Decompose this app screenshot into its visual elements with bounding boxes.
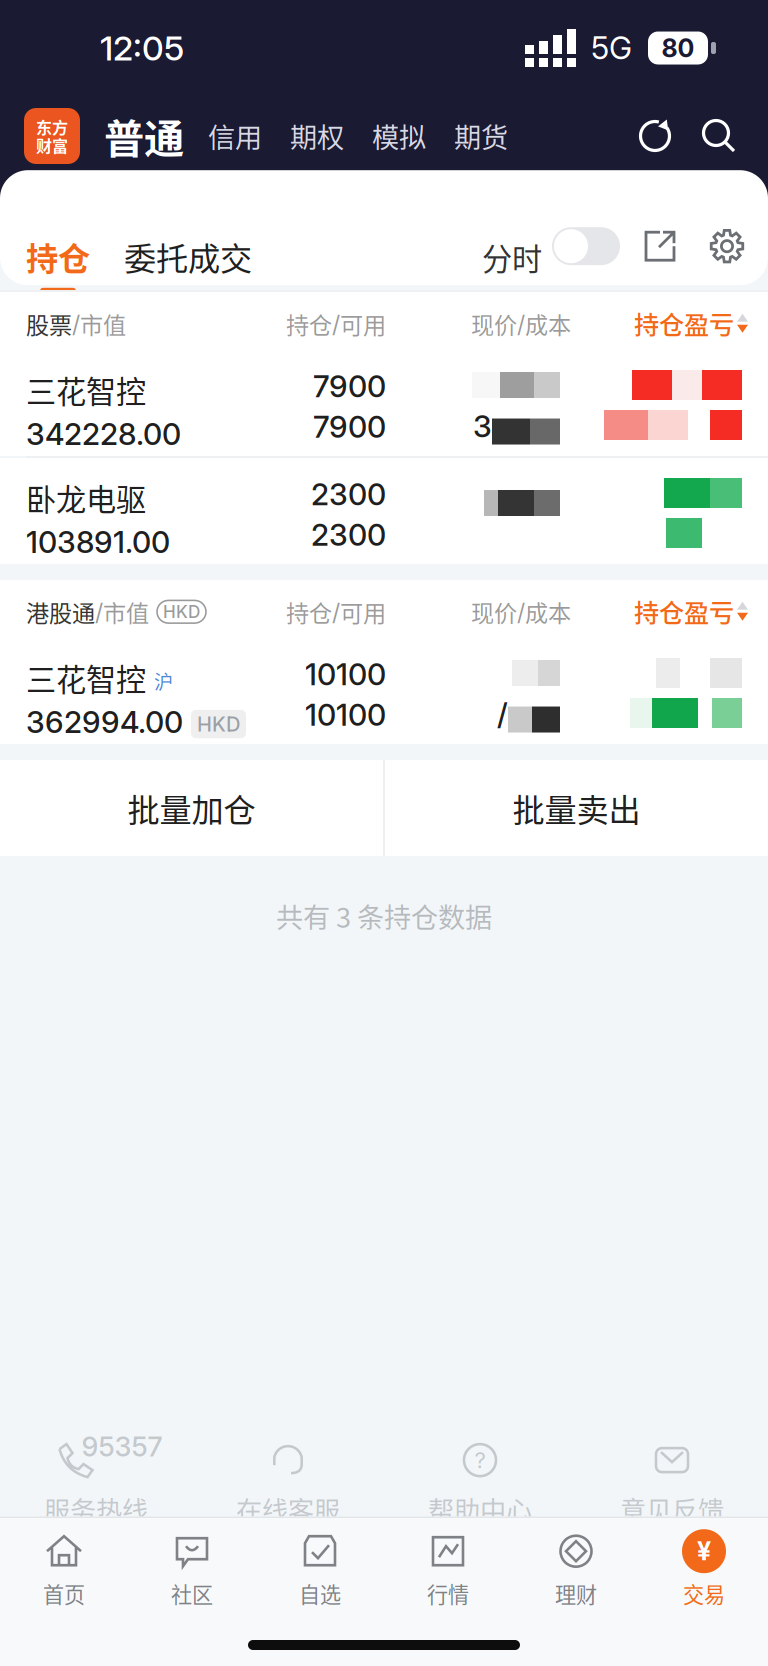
staticText: 分时	[482, 235, 542, 279]
staticText: 自选	[299, 1578, 341, 1609]
staticText: 在线客服	[236, 1490, 340, 1528]
staticText: 现价	[471, 307, 517, 340]
staticText: 批量卖出	[512, 785, 640, 831]
staticText: 12:05	[100, 27, 184, 69]
staticText: 首页	[43, 1578, 85, 1609]
button[interactable]: ¥	[640, 1532, 768, 1609]
staticText: 普通	[104, 107, 184, 165]
button[interactable]: ?	[384, 1440, 576, 1528]
staticText: 10100	[305, 696, 386, 733]
staticText: 委托成交	[124, 233, 252, 280]
staticText: 7900	[313, 368, 386, 404]
staticText: 交易	[683, 1578, 725, 1609]
button[interactable]: Settings	[706, 225, 748, 267]
button[interactable]: 自选	[256, 1532, 384, 1609]
staticText: 共有 3 条持仓数据	[276, 896, 492, 936]
button[interactable]: 95357	[0, 1440, 192, 1528]
staticText: 期货	[454, 116, 508, 156]
button[interactable]: 模拟	[358, 108, 440, 164]
staticText: /	[332, 598, 340, 626]
staticText: 东方	[36, 115, 68, 138]
staticText: 342228.00	[26, 416, 181, 452]
button[interactable]: 普通	[80, 108, 194, 164]
staticText: 95357	[81, 1430, 162, 1463]
staticText: 2300	[311, 516, 386, 553]
staticText: 7900	[313, 408, 386, 445]
staticText: 信用	[208, 116, 262, 156]
staticText: 股票	[26, 307, 72, 340]
staticText: 沪	[154, 667, 173, 695]
staticText: 财富	[36, 133, 68, 157]
staticText: 期权	[290, 116, 344, 156]
staticText: 2300	[311, 476, 386, 512]
staticText: 可用	[340, 307, 386, 340]
staticText: ¥	[697, 1536, 711, 1566]
staticText: 可用	[340, 595, 386, 628]
staticText: 10100	[305, 656, 386, 692]
button[interactable]: Toggle intraday chart	[552, 227, 620, 265]
staticText: /	[517, 598, 525, 626]
button[interactable]: 在线客服	[192, 1440, 384, 1528]
staticText: /	[72, 310, 80, 338]
button[interactable]: 三花智控	[0, 350, 768, 456]
staticText: 持仓	[26, 233, 90, 280]
staticText: 市值	[103, 595, 149, 628]
staticText: 成本	[525, 595, 571, 628]
staticText: 持仓盈亏	[634, 305, 734, 341]
staticText: 模拟	[372, 116, 426, 156]
staticText: 意见反馈	[620, 1490, 724, 1528]
staticText: ?	[474, 1447, 485, 1473]
button[interactable]: 社区	[128, 1532, 256, 1609]
staticText: 3	[473, 408, 492, 444]
staticText: /	[95, 598, 103, 626]
button[interactable]: 批量卖出	[385, 760, 768, 856]
staticText: /	[497, 696, 508, 732]
staticText: 行情	[427, 1578, 469, 1609]
staticText: /	[332, 310, 340, 338]
staticText: 三花智控	[26, 656, 146, 700]
button[interactable]: 行情	[384, 1532, 512, 1609]
button[interactable]: 意见反馈	[576, 1440, 768, 1528]
staticText: 362994.00	[26, 704, 183, 740]
staticText: 三花智控	[26, 368, 146, 412]
staticText: 理财	[555, 1578, 597, 1609]
button[interactable]: 三花智控	[0, 638, 768, 744]
staticText: 80	[661, 33, 694, 63]
staticText: 社区	[171, 1578, 213, 1609]
staticText: 持仓	[286, 307, 332, 340]
staticText: HKD	[163, 601, 200, 622]
button[interactable]: 持仓盈亏	[634, 593, 748, 629]
staticText: 持仓盈亏	[634, 593, 734, 629]
button[interactable]: 信用	[194, 108, 276, 164]
staticText: /	[517, 310, 525, 338]
button[interactable]: 东方	[24, 108, 80, 164]
button[interactable]: 期权	[276, 108, 358, 164]
button[interactable]: Search	[694, 111, 744, 161]
button[interactable]: 持仓	[26, 233, 90, 295]
staticText: 5G	[591, 29, 632, 67]
staticText: 服务热线	[44, 1490, 148, 1528]
button[interactable]: 期货	[440, 108, 522, 164]
button[interactable]: 卧龙电驱	[0, 458, 768, 564]
staticText: 市值	[80, 307, 126, 340]
staticText: 现价	[471, 595, 517, 628]
button[interactable]: Refresh	[630, 111, 680, 161]
button[interactable]: 首页	[0, 1532, 128, 1609]
button[interactable]: 持仓盈亏	[634, 305, 748, 341]
button[interactable]: 委托成交	[90, 233, 252, 280]
button[interactable]: 批量加仓	[0, 760, 383, 856]
staticText: 卧龙电驱	[26, 476, 146, 520]
staticText: 批量加仓	[127, 785, 255, 831]
staticText: 港股通	[26, 595, 95, 628]
staticText: 帮助中心	[428, 1490, 532, 1528]
button[interactable]: 理财	[512, 1532, 640, 1609]
staticText: HKD	[197, 712, 240, 736]
button[interactable]: Share	[640, 226, 680, 266]
staticText: 103891.00	[26, 524, 170, 560]
staticText: 持仓	[286, 595, 332, 628]
staticText: 成本	[525, 307, 571, 340]
